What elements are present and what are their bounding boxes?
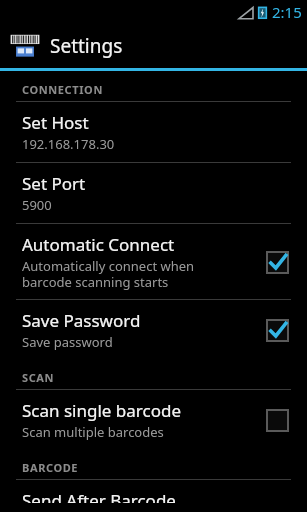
staticText: Settings: [50, 33, 123, 59]
button[interactable]: Unchecked: [261, 404, 293, 436]
button[interactable]: Send After Barcode: [0, 480, 307, 512]
staticText: Automatically connect when barcode scann…: [22, 257, 195, 290]
staticText: Send After Barcode: [22, 489, 176, 503]
button[interactable]: Checked: [261, 314, 293, 346]
button[interactable]: Set Port: [0, 163, 307, 223]
button[interactable]: Save Password: [0, 300, 307, 360]
other: App icon: [9, 32, 41, 60]
staticText: SCAN: [22, 370, 55, 385]
button[interactable]: Set Host: [0, 102, 307, 162]
button[interactable]: Scan single barcode: [0, 390, 307, 450]
staticText: CONNECTION: [22, 82, 103, 97]
staticText: 2:15: [272, 2, 302, 22]
staticText: Set Host: [22, 111, 89, 134]
staticText: BARCODE: [22, 460, 79, 475]
staticText: 192.168.178.30: [22, 135, 115, 153]
staticText: 5900: [22, 196, 52, 214]
staticText: Scan multiple barcodes: [22, 423, 164, 441]
button[interactable]: Checked: [261, 246, 293, 278]
button[interactable]: Automatic Connect: [0, 224, 307, 299]
staticText: Save Password: [22, 309, 141, 332]
staticText: Save password: [22, 333, 113, 351]
staticText: Scan single barcode: [22, 399, 182, 422]
staticText: Automatic Connect: [22, 233, 175, 256]
staticText: Set Port: [22, 172, 86, 195]
